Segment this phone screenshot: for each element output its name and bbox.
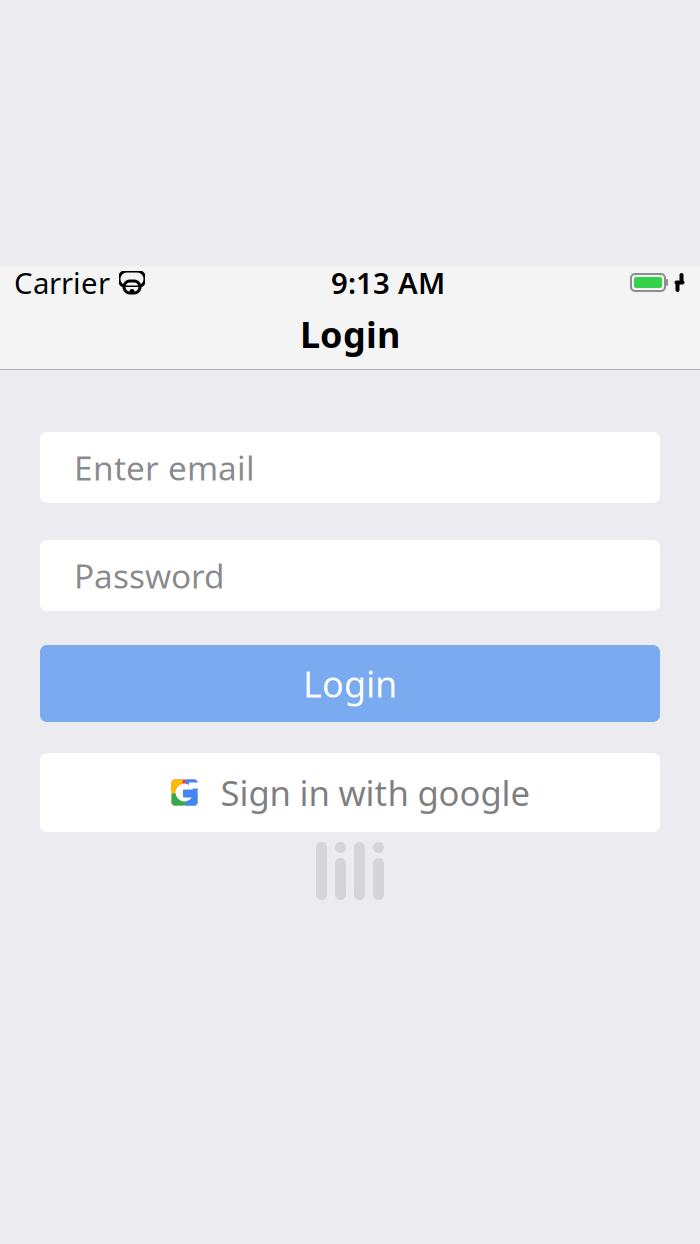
staticText: Carrier	[14, 263, 110, 302]
staticText: Login	[303, 660, 397, 707]
button[interactable]: Sign in with google	[40, 753, 660, 832]
staticText: Sign in with google	[220, 769, 530, 815]
staticText: Enter email	[74, 445, 255, 490]
button[interactable]: Login	[40, 645, 660, 722]
staticText: 9:13 AM	[331, 263, 445, 302]
button[interactable]: Password	[40, 540, 660, 611]
staticText: Password	[74, 553, 225, 598]
button[interactable]: Enter email	[40, 432, 660, 503]
staticText: Login	[300, 310, 400, 358]
